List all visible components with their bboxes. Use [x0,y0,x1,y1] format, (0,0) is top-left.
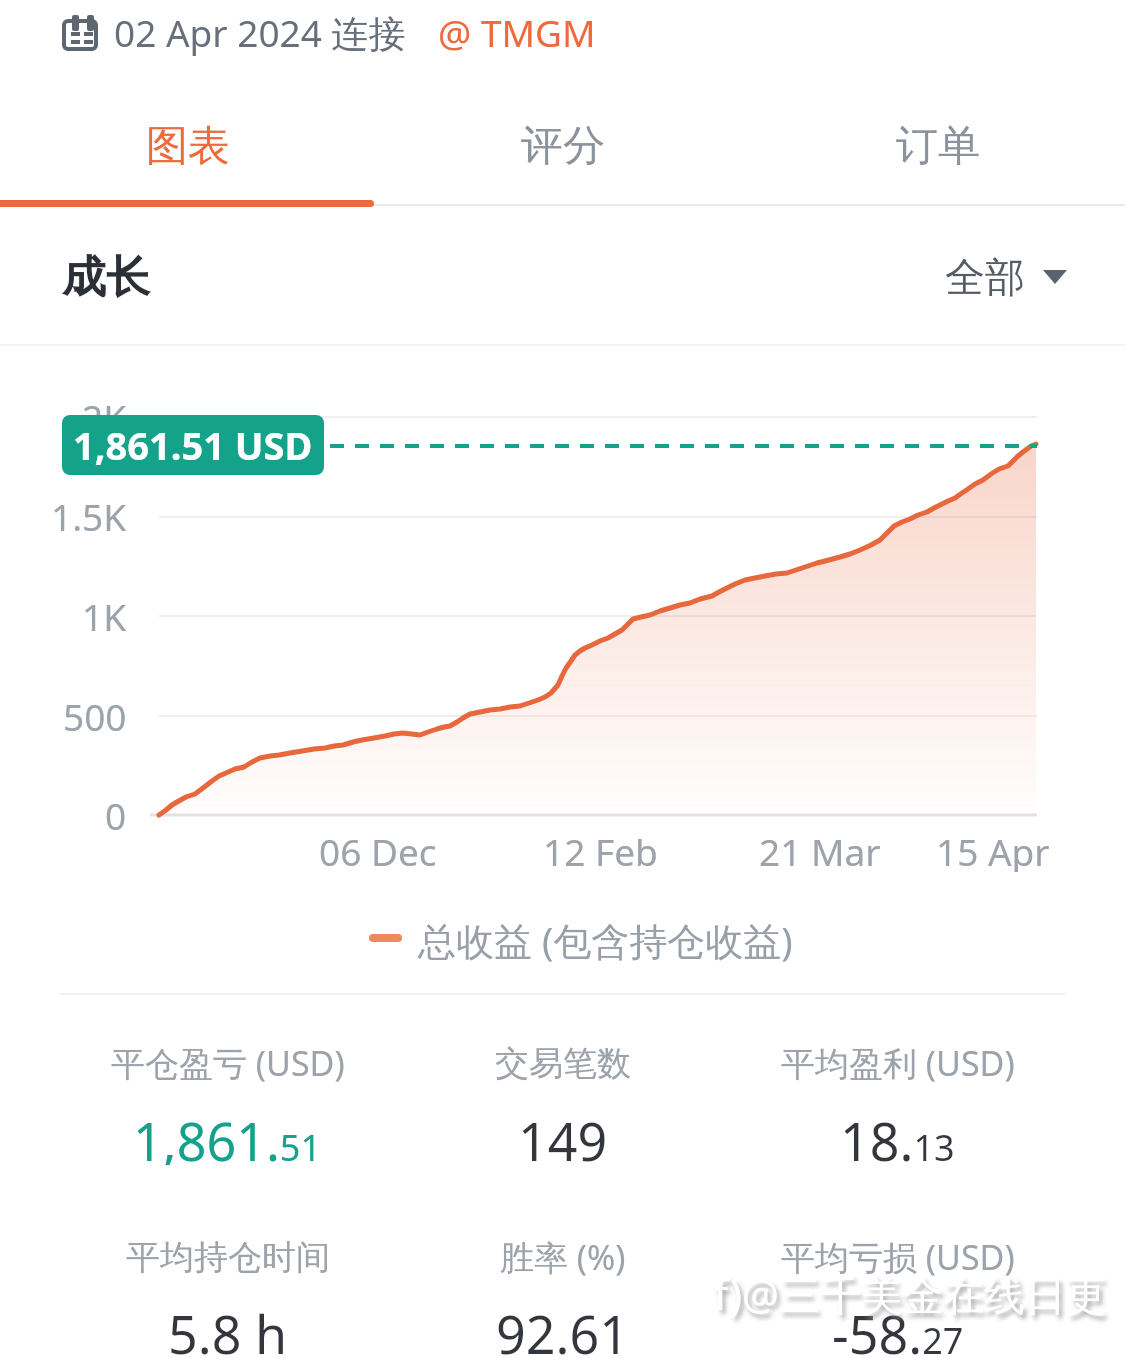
button[interactable]: 订单 [750,98,1125,194]
staticText: 1K [82,591,127,641]
staticText: 15 Apr [936,826,1050,872]
button[interactable]: 图表 [0,98,375,194]
staticText: 21 Mar [759,826,881,872]
staticText: -58.27 [832,1298,964,1358]
button[interactable]: 全部 [945,252,1067,302]
staticText: 1.5K [51,491,127,541]
staticText: 1,861.51 USD [73,419,313,471]
staticText: 149 [518,1105,608,1165]
staticText: 全部 [945,252,1025,302]
staticText: 5.8 h [168,1298,288,1358]
staticText: 胜率 (%) [500,1234,626,1280]
staticText: 1,861.51 [133,1105,322,1165]
staticText: 平仓盈亏 (USD) [111,1040,345,1086]
staticText: 订单 [896,120,980,173]
staticText: 0 [105,790,127,840]
staticText: 交易笔数 [495,1042,631,1085]
staticText: 500 [63,691,127,741]
button[interactable]: 评分 [375,98,750,194]
staticText: 92.61 [496,1298,629,1358]
staticText: 2K [82,392,127,442]
staticText: 12 Feb [543,826,658,872]
staticText: 成长 [62,250,150,305]
button[interactable]: 02 Apr 2024 连接 [60,6,596,58]
staticText: f)@三千美金在线日更 [714,1266,1107,1322]
staticText: 评分 [521,120,605,173]
staticText: 图表 [146,120,230,173]
staticText: 平均持仓时间 [126,1236,330,1279]
staticText: 总收益 (包含持仓收益) [418,914,793,962]
staticText: 06 Dec [319,826,437,872]
staticText: 平均盈利 (USD) [781,1040,1015,1086]
staticText: 18.13 [840,1105,955,1165]
staticText: 平均亏损 (USD) [781,1234,1015,1280]
staticText: @ TMGM [438,7,596,57]
staticText: 02 Apr 2024 连接 [114,7,406,58]
